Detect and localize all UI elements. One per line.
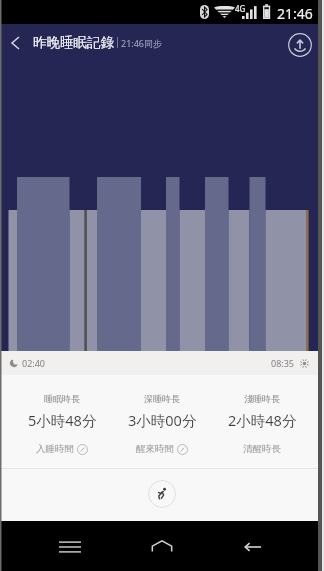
staticText: 02:40 (22, 357, 46, 369)
staticText: 21:46同步 (121, 37, 163, 49)
button[interactable]: Menu (48, 525, 92, 569)
staticText: 淺睡時長 (244, 393, 280, 404)
staticText: 清醒時長 (243, 443, 281, 455)
button[interactable]: Back (232, 525, 276, 569)
button[interactable]: 醒來時間 (112, 443, 212, 455)
staticText: 4G (235, 3, 246, 14)
staticText: 21:46 (277, 4, 313, 23)
button[interactable]: Sync (286, 31, 314, 59)
staticText: 醒來時間 (136, 443, 174, 455)
staticText: 昨晚睡眠記錄 (33, 34, 114, 51)
staticText: 睡眠時長 (44, 393, 80, 404)
button[interactable]: Activity (148, 480, 176, 508)
staticText: 2小時48分 (228, 410, 297, 430)
button[interactable]: 入睡時間 (12, 443, 112, 455)
staticText: 深睡時長 (144, 393, 180, 404)
staticText: 入睡時間 (36, 443, 74, 455)
staticText: 08:35 (271, 357, 295, 369)
staticText: 5小時48分 (28, 410, 97, 430)
staticText: 3小時00分 (128, 410, 197, 430)
button[interactable]: 清醒時長 (212, 443, 312, 455)
button[interactable]: Back (0, 22, 31, 63)
button[interactable]: Home (140, 525, 184, 569)
